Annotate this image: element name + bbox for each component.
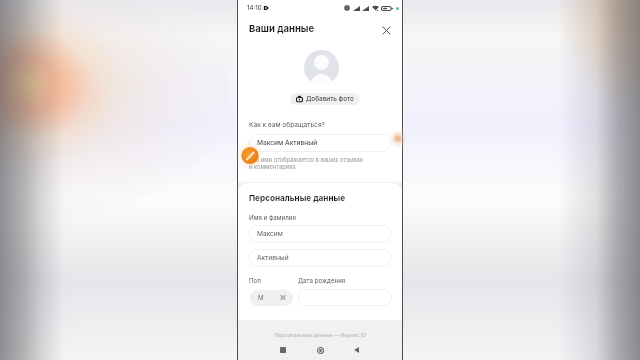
staticText: Персональные данные bbox=[249, 193, 346, 203]
staticText: Максим bbox=[257, 230, 283, 238]
staticText: Это имя отображается в ваших отзывах и к… bbox=[249, 156, 363, 170]
button[interactable]: Активный bbox=[249, 249, 391, 267]
staticText: М bbox=[258, 294, 264, 302]
staticText: 14:10 bbox=[247, 4, 262, 11]
button[interactable]: Максим bbox=[249, 225, 391, 243]
staticText: Ж bbox=[280, 294, 286, 302]
staticText: Дата рождения bbox=[298, 277, 346, 285]
staticText: Добавить фото bbox=[306, 95, 354, 103]
staticText: Пол bbox=[249, 277, 261, 285]
button[interactable]: М bbox=[250, 290, 272, 306]
button[interactable] bbox=[298, 289, 392, 306]
staticText: Ваши данные bbox=[249, 23, 315, 34]
staticText: Как к вам обращаться? bbox=[249, 121, 325, 129]
button[interactable]: Home bbox=[313, 343, 327, 357]
button[interactable]: Добавить фото bbox=[290, 93, 360, 105]
staticText: Персональные данные — Яндекс ID bbox=[238, 332, 402, 338]
staticText: Активный bbox=[257, 254, 289, 262]
button[interactable]: Recents bbox=[276, 343, 290, 357]
button[interactable]: Ж bbox=[272, 290, 293, 306]
button[interactable]: Close bbox=[378, 22, 394, 38]
button[interactable]: Back bbox=[349, 343, 363, 357]
staticText: Имя и фамилия bbox=[249, 214, 296, 222]
button[interactable]: Максим Активный bbox=[249, 134, 391, 152]
staticText: Максим Активный bbox=[257, 139, 318, 147]
